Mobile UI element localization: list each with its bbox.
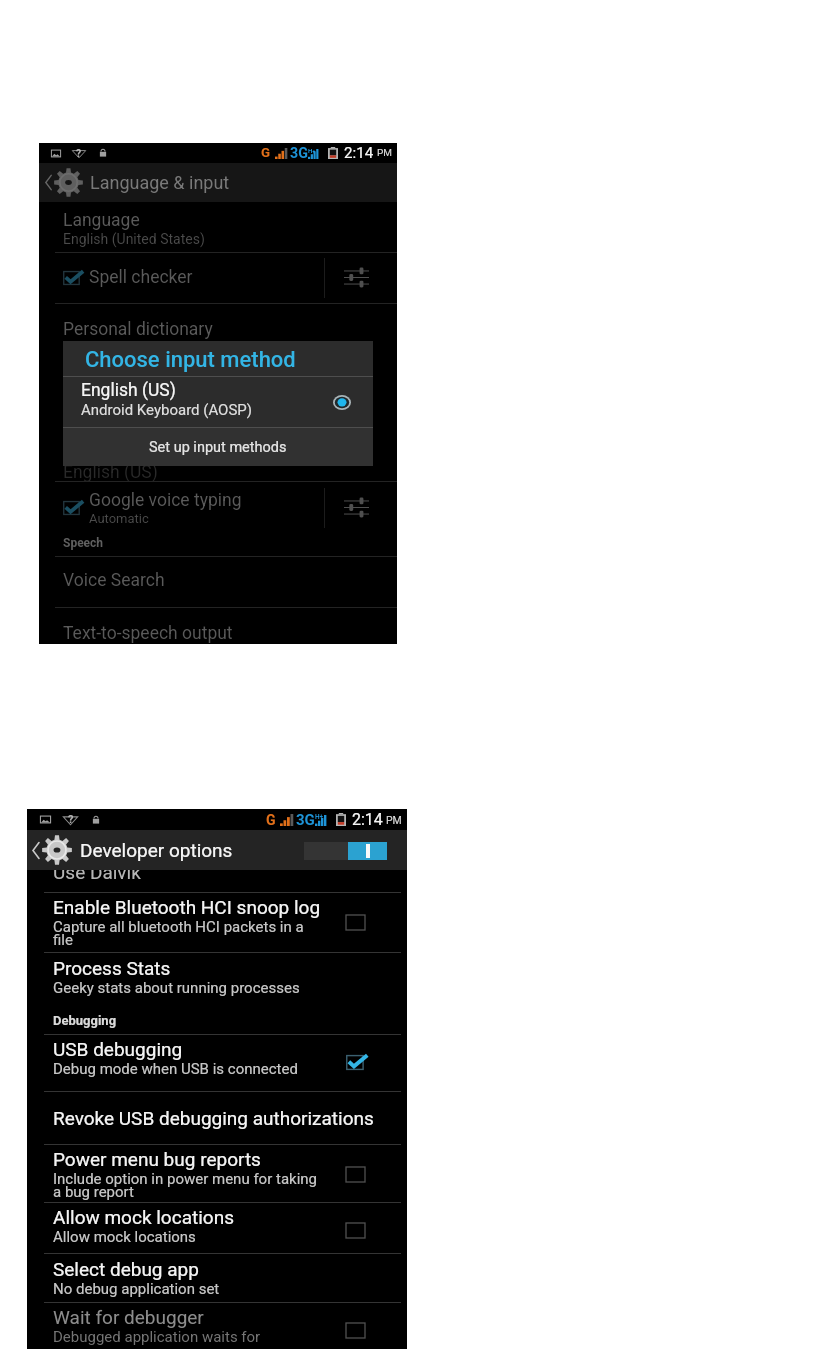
button[interactable]: Allow mock locations — [27, 1202, 407, 1259]
staticText: Spell checker — [89, 267, 193, 288]
staticText: No debug application set — [53, 1280, 220, 1298]
button[interactable]: Revoke USB debugging authorizations — [27, 1091, 407, 1144]
button[interactable]: Personal dictionary — [39, 315, 397, 351]
button[interactable]: USB debugging — [27, 1034, 407, 1091]
button[interactable]: Text-to-speech output — [39, 607, 397, 645]
button[interactable]: Power menu bug reports — [321, 1144, 407, 1205]
staticText: Capture all bluetooth HCI packets in a f… — [53, 918, 304, 949]
staticText: Language — [63, 210, 140, 231]
staticText: Choose input method — [85, 347, 296, 373]
button[interactable]: Language — [39, 209, 397, 251]
button[interactable]: English (US) — [63, 377, 373, 427]
button[interactable]: Spell checker — [39, 252, 324, 303]
staticText: Debugged application waits for — [53, 1328, 261, 1346]
staticText: H+ — [308, 147, 316, 154]
staticText: Speech — [63, 536, 104, 550]
staticText: Google voice typing — [89, 490, 242, 511]
staticText: H+ — [315, 813, 324, 821]
staticText: PM — [377, 147, 392, 159]
staticText: Allow mock locations — [53, 1206, 234, 1228]
button[interactable]: Enable Bluetooth HCI snoop log — [27, 892, 407, 953]
staticText: Developer options — [80, 839, 233, 861]
staticText: Text-to-speech output — [63, 623, 233, 644]
staticText: USB debugging — [53, 1038, 183, 1060]
staticText: Allow mock locations — [53, 1228, 196, 1246]
staticText: Revoke USB debugging authorizations — [53, 1107, 374, 1129]
staticText: Include option in power menu for taking … — [53, 1170, 317, 1201]
button[interactable]: Voice Search — [39, 556, 397, 609]
staticText: English (US) — [81, 380, 176, 401]
button[interactable]: Back — [39, 163, 83, 202]
staticText: Select debug app — [53, 1258, 199, 1280]
staticText: Wait for debugger — [53, 1306, 204, 1328]
button[interactable]: Google voice typing — [39, 481, 324, 534]
staticText: PM — [386, 814, 402, 826]
button[interactable]: Wait for debugger — [321, 1302, 407, 1349]
staticText: 2:14 — [352, 810, 383, 829]
staticText: English (United States) — [63, 231, 205, 247]
button[interactable]: Back — [27, 830, 72, 870]
button[interactable]: Set up input methods — [63, 428, 373, 466]
button[interactable]: Voice typing settings — [325, 481, 397, 534]
button[interactable]: Toggle developer options — [304, 842, 387, 860]
button[interactable]: Wait for debugger — [27, 1302, 407, 1349]
staticText: Debugging — [53, 1013, 117, 1028]
button[interactable]: Process Stats — [27, 953, 407, 1010]
staticText: Process Stats — [53, 957, 171, 979]
staticText: Debug mode when USB is connected — [53, 1060, 298, 1078]
staticText: Automatic — [89, 511, 149, 526]
button[interactable]: Enable Bluetooth HCI snoop log — [321, 892, 407, 953]
staticText: Voice Search — [63, 570, 165, 591]
button[interactable]: Select debug app — [27, 1254, 407, 1311]
staticText: Android Keyboard (AOSP) — [81, 401, 253, 419]
staticText: 2:14 — [344, 144, 374, 162]
staticText: Language & input — [90, 172, 230, 193]
button[interactable]: Allow mock locations — [321, 1202, 407, 1259]
staticText: Power menu bug reports — [53, 1148, 261, 1170]
button[interactable]: USB debugging — [321, 1034, 407, 1091]
staticText: G — [261, 145, 271, 161]
staticText: ? — [68, 813, 74, 824]
staticText: G — [266, 812, 276, 828]
staticText: 3G — [290, 145, 308, 162]
button[interactable]: Power menu bug reports — [27, 1144, 407, 1205]
staticText: Use Dalvik — [53, 870, 141, 883]
staticText: English (US) — [63, 462, 158, 483]
staticText: Personal dictionary — [63, 319, 213, 340]
staticText: Geeky stats about running processes — [53, 979, 300, 997]
staticText: Set up input methods — [149, 439, 287, 456]
staticText: Enable Bluetooth HCI snoop log — [53, 896, 321, 918]
staticText: ? — [76, 147, 82, 157]
staticText: 3G — [296, 811, 315, 829]
button[interactable]: Spell checker settings — [325, 252, 397, 303]
